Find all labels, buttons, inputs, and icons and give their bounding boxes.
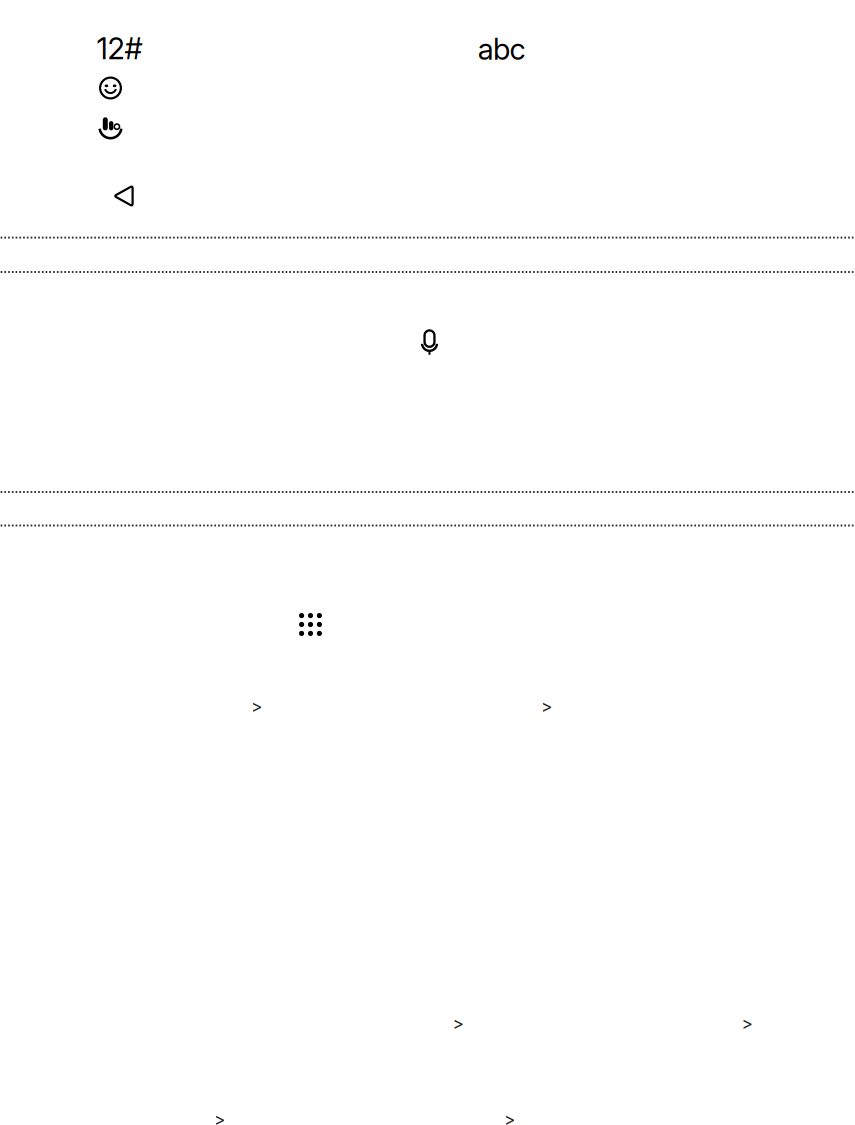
button[interactable]: 12# bbox=[29, 28, 209, 68]
button[interactable]: More candidates bbox=[481, 1097, 537, 1125]
button[interactable]: More candidates bbox=[719, 1001, 775, 1045]
button[interactable]: More candidates bbox=[191, 1097, 247, 1125]
staticText: > bbox=[504, 1109, 515, 1125]
staticText: 12# bbox=[96, 31, 142, 66]
button[interactable]: Handwriting input bbox=[20, 108, 200, 148]
staticText: > bbox=[214, 1109, 225, 1125]
button[interactable]: More candidates bbox=[518, 684, 574, 728]
button[interactable]: More candidates bbox=[228, 684, 284, 728]
staticText: > bbox=[741, 1013, 752, 1034]
staticText: abc bbox=[478, 31, 525, 67]
button[interactable]: abc bbox=[412, 29, 592, 69]
staticText: > bbox=[541, 696, 552, 717]
staticText: > bbox=[452, 1013, 463, 1034]
button[interactable]: Delete bbox=[33, 170, 213, 222]
button[interactable]: Voice input bbox=[329, 302, 529, 382]
button[interactable]: More keyboards bbox=[210, 584, 410, 664]
button[interactable]: More candidates bbox=[430, 1001, 486, 1045]
staticText: > bbox=[251, 696, 262, 717]
button[interactable]: Emoji bbox=[20, 68, 200, 108]
